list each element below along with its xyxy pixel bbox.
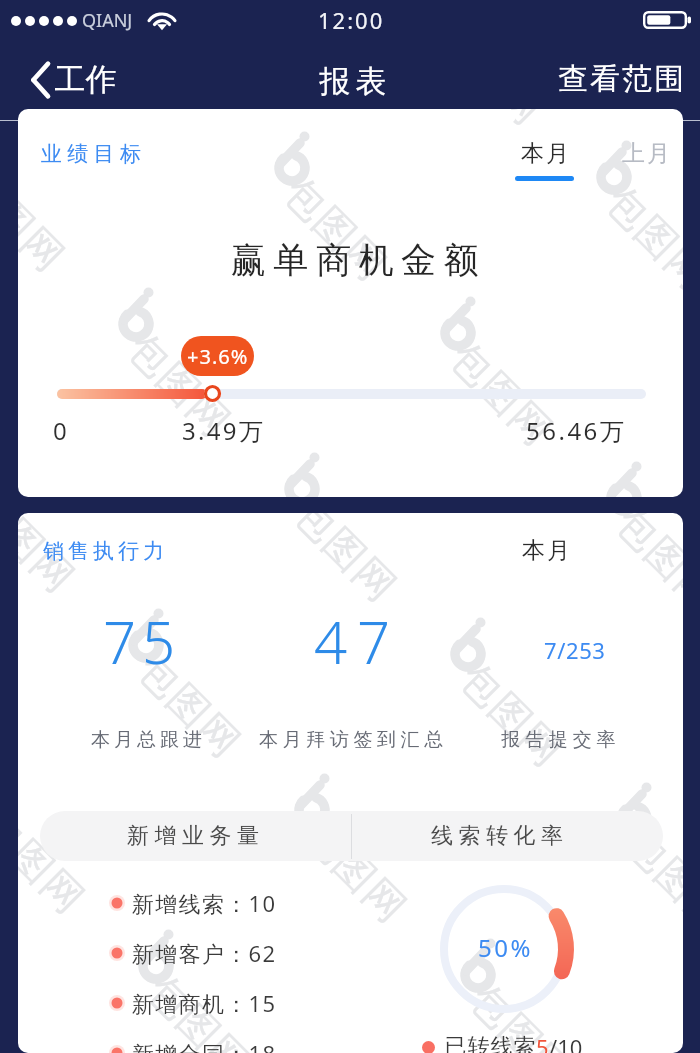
staticText: 包图网 <box>595 175 683 299</box>
staticText: 3.49万 <box>182 414 266 447</box>
staticText: 包图网 <box>439 331 563 455</box>
staticText: /10 <box>549 1032 583 1053</box>
staticText: 工作 <box>54 60 117 99</box>
staticText: QIANJ <box>82 8 133 33</box>
staticText: 业绩目标 <box>41 141 147 167</box>
staticText: 新增合同：18 <box>132 1038 277 1053</box>
staticText: 销售执行力 <box>41 538 166 564</box>
staticText: 包图网 <box>605 513 683 620</box>
staticText: 新增客户：62 <box>132 938 277 968</box>
staticText: 新增商机：15 <box>132 988 277 1018</box>
staticText: 赢单商机金额 <box>26 238 683 282</box>
staticText: 包图网 <box>18 513 85 602</box>
other: Battery <box>643 11 690 29</box>
staticText: 包图网 <box>283 487 407 497</box>
staticText: +3.6% <box>187 343 249 370</box>
staticText: 本月 <box>520 139 570 168</box>
staticText: 已转线索 <box>444 1033 536 1053</box>
staticText: 75 <box>103 602 182 681</box>
other: Back <box>30 61 51 99</box>
staticText: 新增线索：10 <box>132 888 277 918</box>
button[interactable]: 新增客户：62 <box>109 938 277 968</box>
staticText: 47 <box>314 602 401 681</box>
staticText: 包图网 <box>283 513 407 611</box>
staticText: 报表 <box>317 62 389 101</box>
button[interactable]: 本月 <box>505 135 584 185</box>
staticText: 包图网 <box>273 166 397 290</box>
button[interactable]: 新增合同：18 <box>109 1038 277 1053</box>
staticText: 包图网 <box>18 799 95 923</box>
staticText: 包图网 <box>18 157 75 281</box>
staticText: 新增业务量 <box>127 822 265 850</box>
staticText: 包图网 <box>605 496 683 497</box>
button[interactable]: Back <box>26 60 121 99</box>
staticText: 上月 <box>621 139 671 168</box>
staticText: 本月 <box>521 536 571 565</box>
staticText: 包图网 <box>449 652 573 776</box>
staticText: 包图网 <box>293 808 417 932</box>
staticText: 12:00 <box>318 5 385 35</box>
button[interactable]: 新增线索：10 <box>109 888 277 918</box>
staticText: 0 <box>53 414 67 447</box>
staticText: 线索转化率 <box>431 822 569 850</box>
staticText: 包图网 <box>18 478 85 497</box>
button[interactable]: 查看范围 <box>557 60 700 98</box>
staticText: 7/253 <box>544 635 606 665</box>
other: Wi-Fi <box>150 6 174 25</box>
staticText: 5 <box>536 1032 549 1053</box>
button[interactable]: 上月 <box>611 135 681 172</box>
staticText: 56.46万 <box>526 414 627 447</box>
staticText: 本月拜访签到汇总 <box>259 728 448 752</box>
staticText: 报告提交率 <box>499 728 618 752</box>
staticText: 包图网 <box>429 109 553 134</box>
staticText: 包图网 <box>615 817 683 941</box>
staticText: 包图网 <box>459 973 583 1053</box>
staticText: 包图网 <box>137 964 261 1053</box>
button[interactable]: 新增业务量 <box>40 811 351 861</box>
staticText: 本月总跟进 <box>89 728 204 752</box>
button[interactable]: 线索转化率 <box>352 811 663 861</box>
staticText: 包图网 <box>127 643 251 767</box>
staticText: 包图网 <box>117 322 241 446</box>
staticText: 50% <box>478 931 533 964</box>
button[interactable]: 新增商机：15 <box>109 988 277 1018</box>
